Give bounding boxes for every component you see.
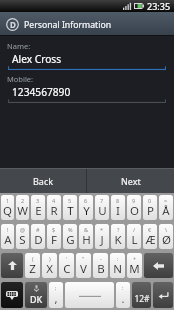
staticText: W — [17, 203, 28, 219]
button[interactable]: % — [63, 224, 77, 249]
staticText: ! — [7, 226, 9, 233]
staticText: F — [51, 232, 57, 248]
button[interactable]: + — [127, 253, 142, 278]
button[interactable]: Back — [0, 168, 86, 193]
button[interactable]: Switch keyboard — [1, 282, 23, 308]
button[interactable]: 12# — [132, 282, 151, 308]
button[interactable]: ! — [1, 224, 14, 249]
button[interactable]: Shift — [1, 253, 23, 278]
button[interactable]: € — [143, 224, 157, 249]
button[interactable]: & — [79, 224, 93, 249]
button[interactable]: Next — [87, 168, 174, 193]
staticText: V — [80, 261, 87, 277]
button[interactable]: ? — [111, 224, 125, 249]
staticText: B — [97, 261, 105, 277]
button[interactable]: Voice input — [25, 282, 47, 308]
staticText: K — [114, 232, 122, 248]
button[interactable]: @ — [16, 224, 29, 249]
staticText: 0 — [148, 197, 152, 204]
staticText: & — [84, 226, 89, 233]
staticText: Back — [33, 175, 54, 187]
staticText: O — [130, 203, 139, 219]
staticText: / — [133, 226, 136, 233]
staticText: 9 — [132, 197, 136, 204]
staticText: H — [82, 232, 91, 248]
button[interactable]: * — [95, 224, 109, 249]
staticText: . — [121, 291, 125, 307]
staticText: Ø — [162, 232, 171, 248]
staticText: 1234567890 — [12, 85, 71, 99]
staticText: * — [100, 226, 104, 233]
staticText: : — [122, 284, 124, 291]
button[interactable]: 6 — [79, 195, 93, 220]
staticText: Z — [29, 261, 36, 277]
staticText: U — [98, 203, 107, 219]
staticText: \ — [165, 226, 168, 233]
button[interactable]: 7 — [95, 195, 109, 220]
button[interactable]: ) — [42, 253, 57, 278]
staticText: Name: — [7, 41, 31, 51]
staticText: @ — [20, 226, 25, 233]
staticText: M — [129, 261, 140, 277]
staticText: ) — [49, 255, 51, 262]
staticText: Personal Information — [24, 19, 112, 31]
button[interactable]: " — [76, 253, 91, 278]
button[interactable]: = — [159, 195, 173, 220]
staticText: ; — [55, 284, 57, 291]
staticText: P — [147, 203, 154, 219]
button[interactable]: 4 — [47, 195, 61, 220]
staticText: - — [100, 255, 102, 262]
staticText: # — [36, 226, 40, 233]
button[interactable]: ; — [49, 282, 63, 308]
staticText: 2 — [21, 197, 25, 204]
staticText: ' — [66, 255, 68, 262]
staticText: Alex Cross — [12, 52, 62, 66]
staticText: ( — [32, 255, 34, 262]
button[interactable]: - — [93, 253, 108, 278]
button[interactable]: 0 — [143, 195, 157, 220]
button[interactable]: \ — [159, 224, 173, 249]
button[interactable]: ' — [59, 253, 74, 278]
staticText: Mobile: — [7, 74, 34, 84]
staticText: L — [131, 232, 138, 248]
staticText: Å — [162, 203, 170, 219]
button[interactable]: 9 — [127, 195, 141, 220]
staticText: S — [19, 232, 26, 248]
staticText: 6 — [84, 197, 88, 204]
staticText: T — [67, 203, 74, 219]
staticText: 3 — [36, 197, 40, 204]
staticText: E — [35, 203, 42, 219]
staticText: A — [4, 232, 12, 248]
staticText: 1 — [6, 197, 10, 204]
staticText: = — [164, 197, 168, 204]
staticText: J — [100, 232, 104, 248]
staticText: Q — [3, 203, 12, 219]
staticText: Æ — [145, 232, 156, 248]
staticText: % — [68, 226, 73, 233]
staticText: X — [46, 261, 53, 277]
button[interactable]: 2 — [16, 195, 29, 220]
button[interactable]: Enter — [153, 282, 173, 308]
button[interactable]: 8 — [111, 195, 125, 220]
staticText: " — [82, 255, 85, 262]
staticText: R — [50, 203, 58, 219]
button[interactable]: : — [110, 253, 125, 278]
button[interactable]: / — [127, 224, 141, 249]
button[interactable]: : — [116, 282, 130, 308]
button[interactable]: Backspace — [144, 253, 173, 278]
button[interactable]: $ — [47, 224, 61, 249]
button[interactable]: 1 — [1, 195, 14, 220]
staticText: 7 — [100, 197, 104, 204]
staticText: 4 — [52, 197, 56, 204]
button[interactable]: # — [31, 224, 45, 249]
button[interactable]: ( — [25, 253, 40, 278]
staticText: G — [66, 232, 75, 248]
button[interactable]: 5 — [63, 195, 77, 220]
button[interactable]: Space — [65, 282, 114, 308]
staticText: Y — [83, 203, 90, 219]
staticText: DK — [30, 293, 43, 305]
staticText: ? — [117, 226, 120, 233]
button[interactable]: 3 — [31, 195, 45, 220]
staticText: N — [113, 261, 122, 277]
button[interactable]: D — [0, 12, 174, 36]
